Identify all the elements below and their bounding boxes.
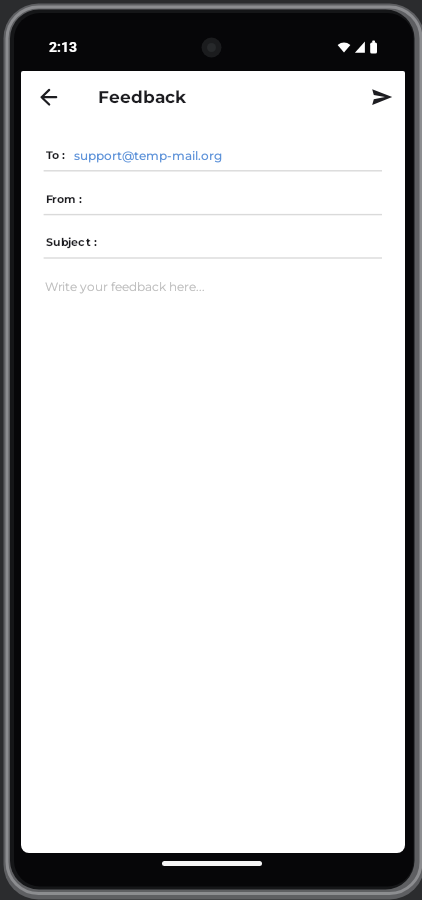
button[interactable]: [362, 80, 398, 114]
button[interactable]: [33, 82, 64, 112]
button[interactable]: [43, 187, 382, 216]
button[interactable]: [43, 230, 382, 259]
button[interactable]: [43, 143, 382, 172]
button[interactable]: [43, 272, 382, 304]
